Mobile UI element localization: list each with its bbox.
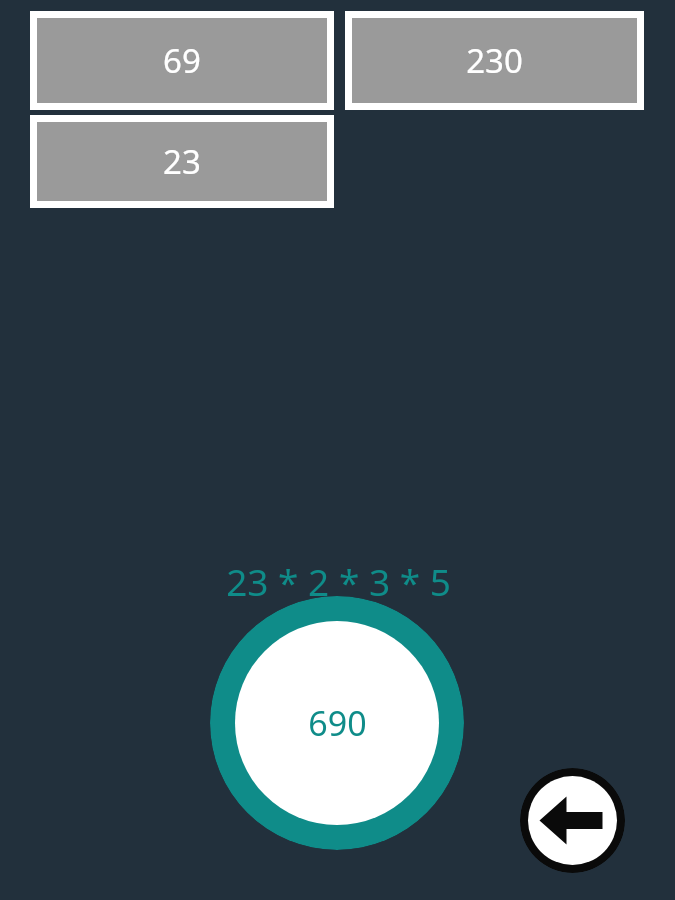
- staticText: 690: [308, 700, 367, 746]
- button[interactable]: 23: [30, 115, 334, 208]
- button[interactable]: 230: [345, 11, 644, 110]
- button[interactable]: 690: [210, 596, 464, 850]
- staticText: 23: [163, 139, 201, 184]
- staticText: 23 * 2 * 3 * 5: [226, 556, 451, 600]
- staticText: 230: [466, 38, 523, 83]
- staticText: 69: [163, 38, 201, 83]
- button[interactable]: Back: [520, 768, 625, 873]
- button[interactable]: 69: [30, 11, 334, 110]
